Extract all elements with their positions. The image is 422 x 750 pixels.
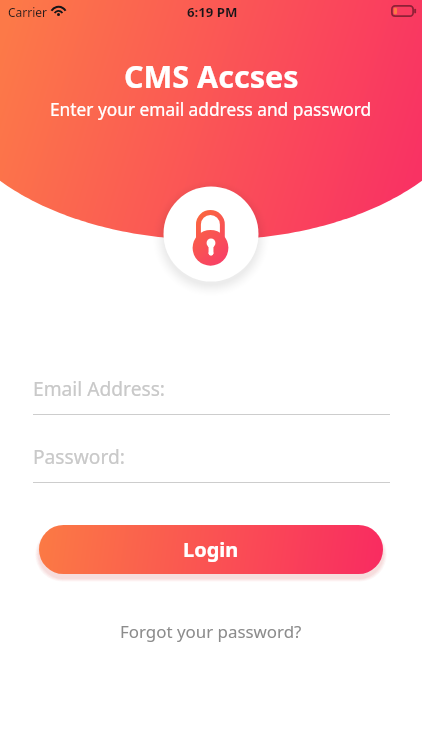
staticText: Carrier xyxy=(8,4,48,20)
staticText: Enter your email address and password xyxy=(50,98,372,122)
button[interactable]: Login xyxy=(39,525,383,574)
staticText: Email Address: xyxy=(33,375,166,401)
staticText: Forgot your password? xyxy=(120,620,302,643)
other: Wi-Fi signal xyxy=(50,4,67,16)
staticText: 6:19 PM xyxy=(187,3,238,21)
staticText: Password: xyxy=(33,443,125,469)
button[interactable]: Forgot your password? xyxy=(114,616,308,647)
button[interactable]: Password: xyxy=(33,439,390,483)
button[interactable]: Email Address: xyxy=(33,371,390,415)
staticText: CMS Accses xyxy=(124,55,299,97)
other: Battery xyxy=(391,5,418,18)
staticText: Login xyxy=(183,536,239,563)
